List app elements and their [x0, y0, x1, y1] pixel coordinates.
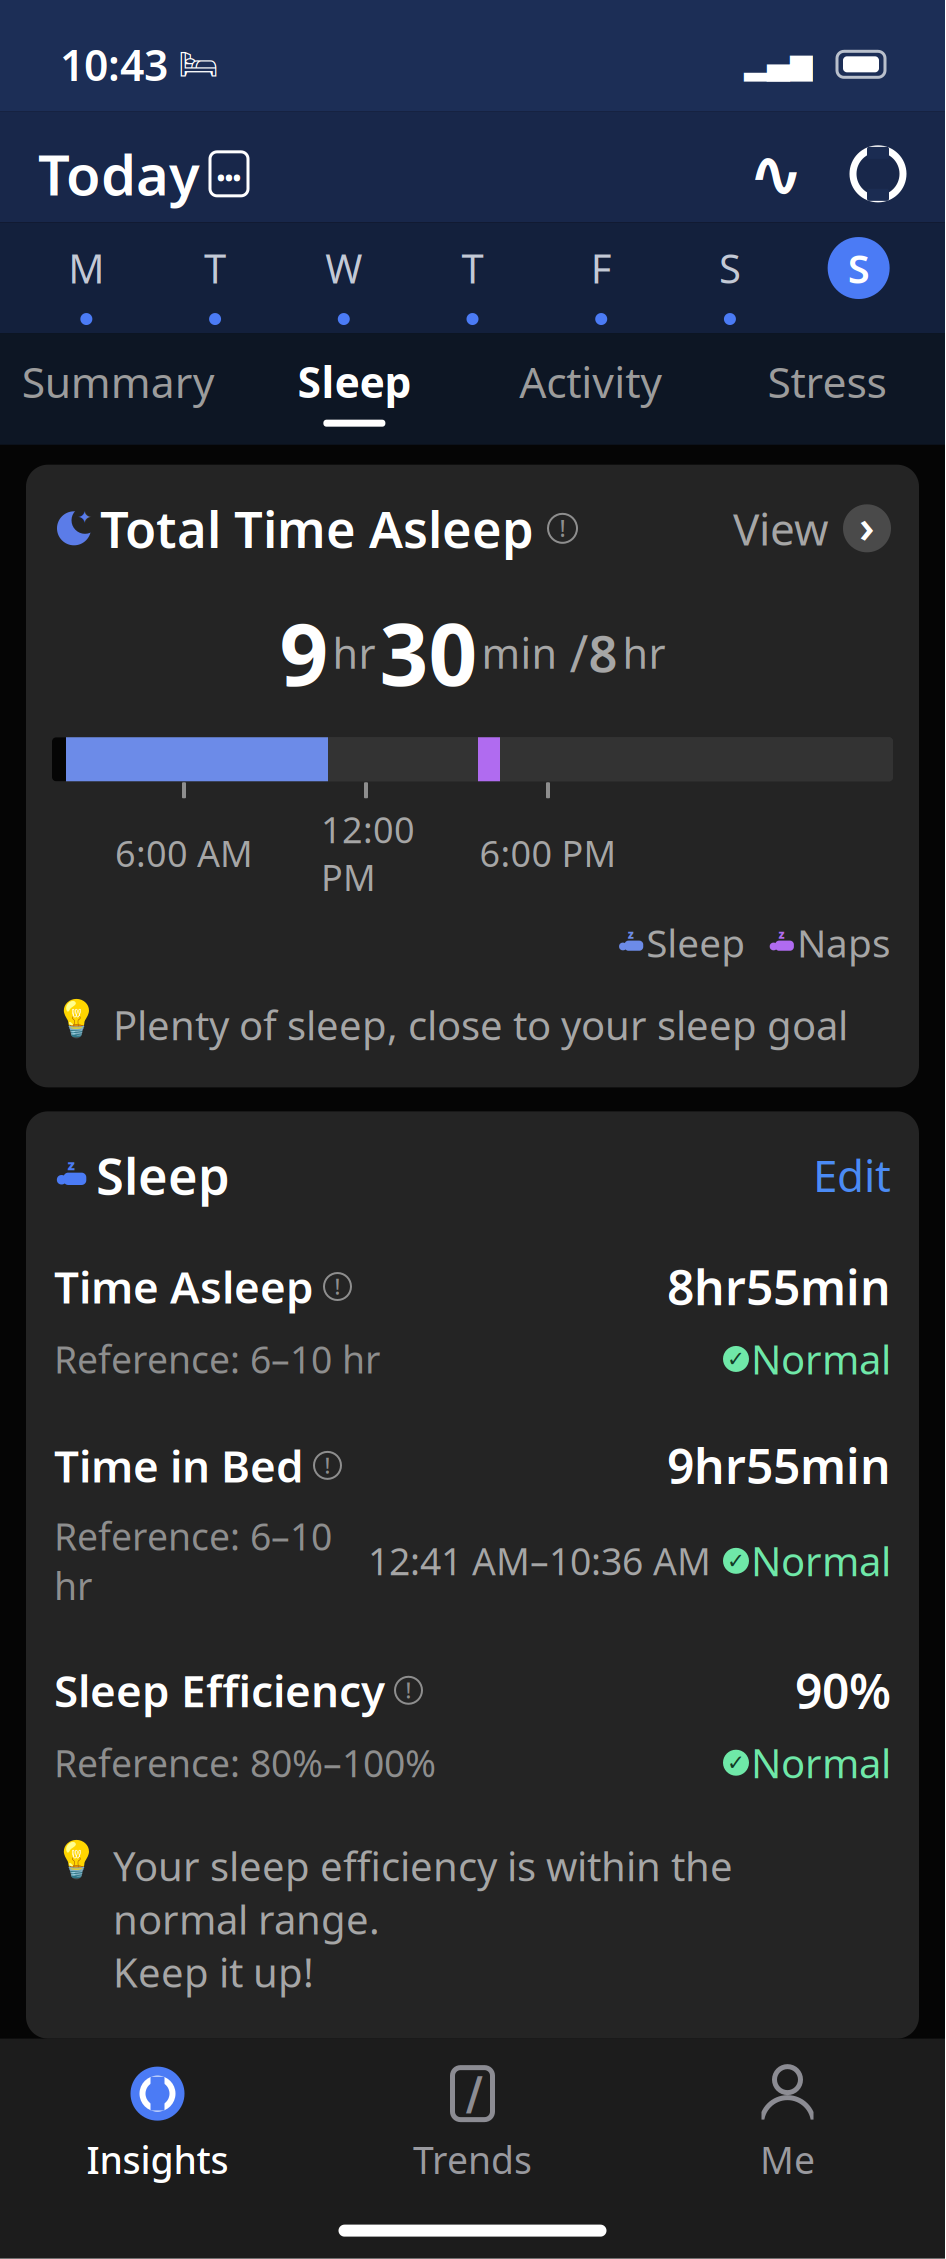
- button[interactable]: Summary: [0, 353, 236, 427]
- button[interactable]: ∕: [315, 2065, 630, 2184]
- staticText: 💡: [54, 998, 99, 1039]
- staticText: z: [778, 926, 784, 942]
- staticText: Edit: [813, 1146, 891, 1204]
- staticText: 10:43: [60, 36, 168, 93]
- button[interactable]: Stress: [709, 353, 945, 427]
- staticText: Summary: [22, 353, 215, 410]
- staticText: F: [591, 241, 612, 295]
- staticText: Sleep: [297, 353, 411, 410]
- staticText: hr: [622, 625, 665, 680]
- button[interactable]: Sync: [849, 145, 907, 203]
- staticText: 8: [588, 619, 617, 686]
- staticText: T: [204, 241, 226, 295]
- staticText: !: [559, 513, 565, 543]
- staticText: Me: [760, 2135, 815, 2184]
- button[interactable]: T: [151, 237, 279, 325]
- staticText: 12:41 AM–10:36 AM: [368, 1536, 711, 1586]
- button[interactable]: S: [794, 237, 923, 325]
- staticText: S: [848, 241, 870, 295]
- staticText: 🛏: [178, 46, 219, 83]
- staticText: W: [325, 241, 362, 295]
- button[interactable]: T: [408, 237, 537, 325]
- staticText: 6:00 AM: [115, 829, 253, 877]
- staticText: ✓: [727, 1549, 745, 1573]
- staticText: Reference: 6–10 hr: [54, 1511, 332, 1610]
- staticText: 9hr55min: [667, 1433, 891, 1497]
- staticText: ✓: [727, 1751, 745, 1775]
- staticText: View: [733, 499, 829, 557]
- staticText: Time in Bed: [54, 1436, 304, 1495]
- staticText: 💡: [54, 1839, 99, 1880]
- staticText: ✓: [727, 1347, 745, 1371]
- staticText: Stress: [767, 353, 886, 410]
- staticText: z: [68, 1155, 75, 1174]
- staticText: Activity: [519, 353, 662, 410]
- staticText: Normal: [751, 1736, 891, 1789]
- button[interactable]: Sleep: [236, 353, 473, 427]
- staticText: •••: [217, 165, 241, 191]
- staticText: 90%: [795, 1658, 891, 1722]
- staticText: Your sleep efficiency is within the norm…: [113, 1839, 733, 1999]
- staticText: ∕: [466, 2068, 483, 2119]
- staticText: Time Asleep: [54, 1257, 314, 1316]
- staticText: Total Time Asleep: [100, 495, 534, 562]
- staticText: z: [628, 926, 634, 942]
- staticText: Naps: [797, 917, 891, 968]
- staticText: Sleep Efficiency: [54, 1661, 385, 1719]
- staticText: 9: [279, 596, 328, 709]
- staticText: 8hr55min: [667, 1255, 891, 1318]
- staticText: Sleep: [96, 1141, 230, 1209]
- staticText: Normal: [751, 1534, 891, 1587]
- staticText: Normal: [751, 1332, 891, 1385]
- button[interactable]: M: [22, 237, 151, 325]
- button[interactable]: Vitals: [747, 145, 805, 203]
- button[interactable]: Activity: [472, 353, 709, 427]
- button[interactable]: F: [537, 237, 666, 325]
- staticText: S: [719, 241, 741, 295]
- staticText: Reference: 6–10 hr: [54, 1334, 380, 1384]
- staticText: 6:00 PM: [479, 829, 616, 877]
- button[interactable]: ✦: [26, 465, 919, 562]
- staticText: ▂▄▆: [744, 48, 813, 81]
- staticText: Today: [38, 137, 200, 211]
- button[interactable]: Today: [38, 137, 248, 211]
- button[interactable]: Time in Bed: [26, 1427, 919, 1616]
- staticText: /: [569, 619, 588, 686]
- button[interactable]: W: [279, 237, 408, 325]
- staticText: hr: [332, 625, 375, 680]
- staticText: !: [334, 1272, 340, 1301]
- button[interactable]: S: [666, 237, 794, 325]
- button[interactable]: Me: [630, 2065, 945, 2184]
- staticText: ∿: [748, 136, 804, 212]
- button[interactable]: Sleep Efficiency: [26, 1652, 919, 1795]
- button[interactable]: Time Asleep: [26, 1249, 919, 1392]
- staticText: min: [481, 625, 557, 680]
- staticText: ›: [859, 495, 875, 555]
- button[interactable]: Edit: [813, 1146, 891, 1204]
- staticText: Sleep: [646, 917, 745, 968]
- staticText: Reference: 80%–100%: [54, 1738, 436, 1787]
- staticText: !: [405, 1676, 411, 1704]
- button[interactable]: Insights: [0, 2065, 315, 2184]
- staticText: ✦: [77, 507, 92, 527]
- staticText: Plenty of sleep, close to your sleep goa…: [113, 998, 848, 1051]
- staticText: 30: [379, 596, 477, 709]
- staticText: 12:00 PM: [321, 805, 415, 901]
- staticText: T: [461, 241, 483, 295]
- staticText: Insights: [86, 2135, 228, 2184]
- staticText: !: [324, 1451, 330, 1479]
- staticText: Trends: [413, 2135, 532, 2184]
- staticText: M: [68, 241, 104, 295]
